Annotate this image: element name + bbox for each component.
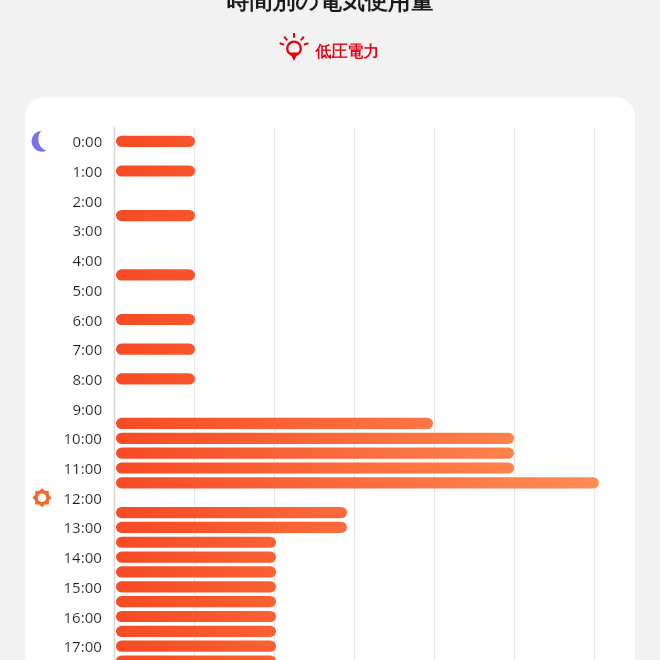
button[interactable]: Hourly electricity usage chart bbox=[0, 0, 660, 660]
